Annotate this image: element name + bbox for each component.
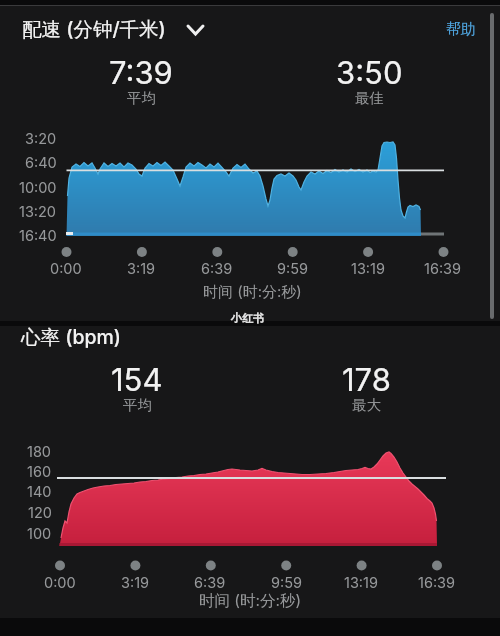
staticText: 配速 (分钟/千米) (22, 17, 166, 42)
staticText: 16:40 (19, 227, 57, 245)
staticText: 16:39 (418, 574, 456, 592)
staticText: 6:40 (25, 154, 57, 172)
staticText: 120 (28, 504, 52, 522)
staticText: 6:39 (194, 574, 226, 592)
staticText: 160 (27, 463, 52, 481)
staticText: 13:19 (344, 574, 378, 592)
staticText: 16:39 (424, 260, 462, 278)
button[interactable]: 心率 (bpm) (21, 317, 201, 357)
staticText: 帮助 (446, 20, 476, 39)
staticText: 100 (27, 525, 52, 543)
button[interactable]: 配速 (分钟/千米) (22, 9, 242, 49)
staticText: 平均 (123, 396, 152, 414)
staticText: 9:59 (277, 260, 308, 278)
staticText: 时间 (时:分:秒) (203, 282, 302, 301)
staticText: 10:00 (19, 179, 57, 197)
staticText: 3:19 (127, 260, 156, 278)
staticText: 小红书 (231, 311, 264, 325)
staticText: 154 (111, 361, 163, 399)
staticText: 7:39 (109, 54, 173, 92)
staticText: 3:20 (25, 130, 57, 148)
staticText: 178 (342, 361, 391, 399)
staticText: 时间 (时:分:秒) (199, 591, 302, 611)
staticText: 3:50 (336, 54, 403, 92)
staticText: 平均 (127, 89, 156, 107)
staticText: 180 (27, 443, 52, 461)
staticText: 0:00 (50, 260, 82, 278)
staticText: 0:00 (44, 574, 76, 592)
staticText: 心率 (bpm) (21, 325, 122, 350)
staticText: 最大 (352, 396, 381, 414)
staticText: 13:20 (19, 203, 57, 221)
staticText: 140 (27, 483, 52, 501)
staticText: 6:39 (201, 260, 233, 278)
staticText: 3:19 (121, 574, 150, 592)
staticText: 13:19 (351, 260, 385, 278)
staticText: 最佳 (355, 89, 384, 107)
staticText: 9:59 (271, 574, 302, 592)
button[interactable]: 帮助 (426, 11, 496, 47)
